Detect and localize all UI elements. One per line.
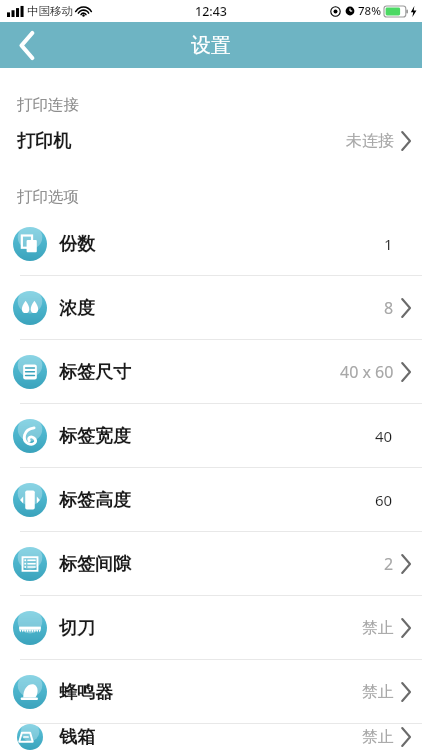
staticText: 禁止	[362, 618, 394, 638]
button[interactable]: 切刀	[0, 596, 422, 660]
button[interactable]: 标签尺寸	[0, 340, 422, 404]
staticText: 切刀	[59, 617, 95, 640]
staticText: 浓度	[59, 297, 95, 320]
staticText: 40	[375, 426, 393, 446]
staticText: 12:43	[195, 3, 228, 20]
staticText: 标签间隙	[59, 553, 131, 576]
staticText: 禁止	[362, 727, 394, 747]
staticText: 禁止	[362, 682, 394, 702]
staticText: 中国移动	[27, 4, 73, 18]
staticText: 蜂鸣器	[59, 681, 113, 704]
staticText: 打印机	[17, 130, 71, 153]
staticText: 40 x 60	[340, 361, 394, 383]
staticText: 钱箱	[59, 726, 95, 749]
button[interactable]: 浓度	[0, 276, 422, 340]
staticText: 8	[384, 297, 394, 319]
staticText: 标签尺寸	[59, 361, 131, 384]
staticText: 设置	[191, 33, 231, 58]
staticText: 未连接	[346, 131, 394, 151]
button[interactable]: 蜂鸣器	[0, 660, 422, 724]
staticText: 60	[375, 490, 393, 510]
button[interactable]: 钱箱	[0, 724, 422, 750]
staticText: 打印选项	[17, 187, 79, 207]
staticText: 标签高度	[59, 489, 131, 512]
button[interactable]: 标签宽度	[0, 404, 422, 468]
button[interactable]: 打印机	[0, 120, 422, 162]
button[interactable]: 标签间隙	[0, 532, 422, 596]
staticText: 标签宽度	[59, 425, 131, 448]
staticText: 78%	[358, 3, 381, 19]
staticText: 1	[384, 234, 393, 254]
button[interactable]: 份数	[0, 212, 422, 276]
staticText: 打印连接	[17, 95, 79, 115]
staticText: 2	[384, 553, 394, 575]
button[interactable]: Back	[0, 22, 54, 68]
staticText: 份数	[59, 233, 95, 256]
button[interactable]: 标签高度	[0, 468, 422, 532]
